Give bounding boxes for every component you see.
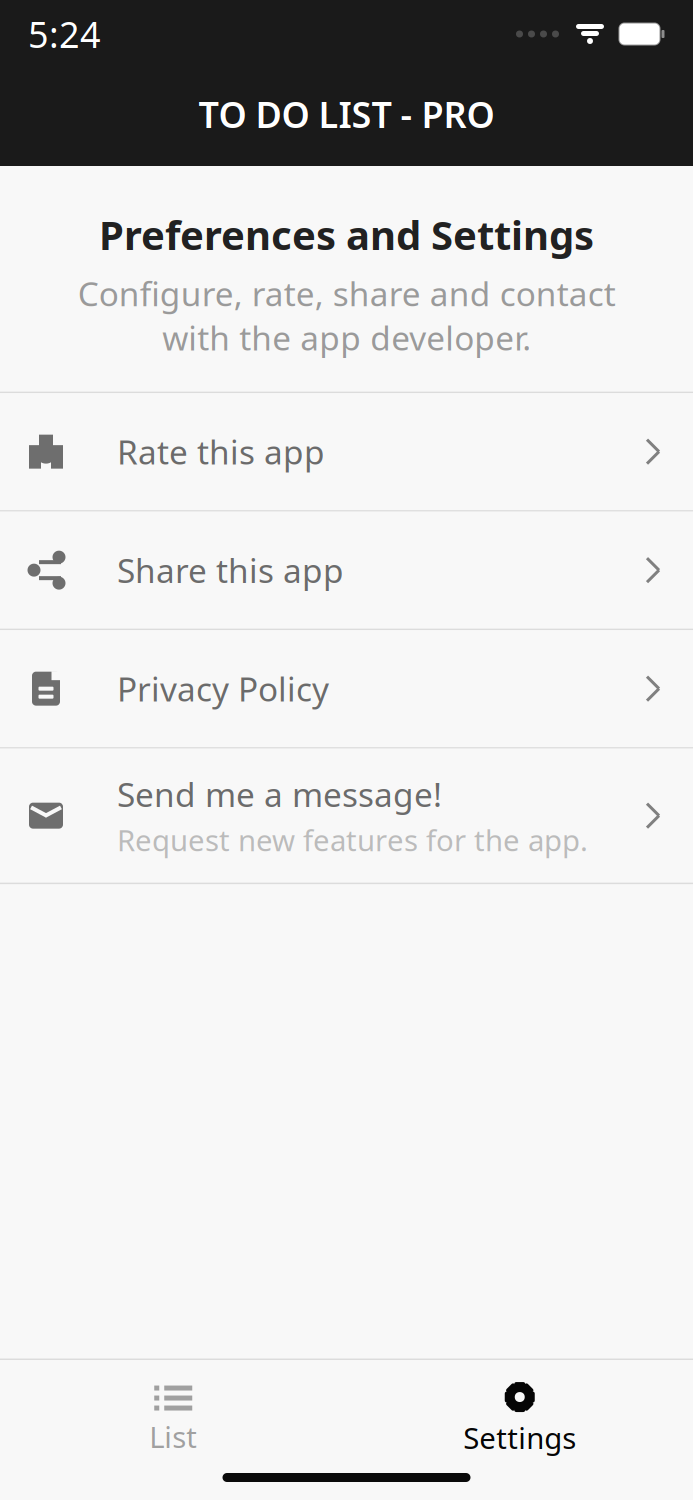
- staticText: Request new features for the app.: [117, 820, 588, 859]
- staticText: Preferences and Settings: [99, 208, 594, 261]
- button[interactable]: Send me a message!: [0, 749, 693, 883]
- staticText: 5:24: [28, 10, 101, 58]
- staticText: TO DO LIST - PRO: [198, 90, 494, 138]
- button[interactable]: Privacy Policy: [0, 630, 693, 747]
- staticText: Rate this app: [117, 429, 325, 474]
- staticText: Configure, rate, share and contact with …: [77, 271, 615, 360]
- staticText: Send me a message!: [117, 772, 442, 816]
- staticText: Share this app: [117, 548, 344, 592]
- staticText: Settings: [463, 1418, 576, 1457]
- button[interactable]: Settings: [346, 1360, 693, 1473]
- button[interactable]: List: [0, 1361, 346, 1472]
- staticText: Privacy Policy: [117, 666, 329, 711]
- button[interactable]: Rate this app: [0, 393, 693, 510]
- button[interactable]: Share this app: [0, 512, 693, 629]
- staticText: List: [149, 1417, 197, 1456]
